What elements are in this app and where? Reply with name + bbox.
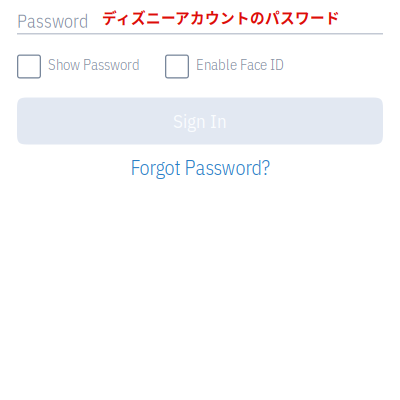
button[interactable]: Enable Face ID [165,54,284,78]
button[interactable]: Password [17,0,383,34]
button[interactable]: Forgot Password? [17,156,383,178]
button[interactable]: Show Password [17,54,140,78]
staticText: Forgot Password? [130,154,269,180]
staticText: Enable Face ID [196,55,284,74]
staticText: ディズニーアカウントのパスワード [102,6,340,28]
staticText: Password [17,9,88,33]
staticText: Show Password [48,55,140,74]
staticText: Sign In [173,109,227,133]
